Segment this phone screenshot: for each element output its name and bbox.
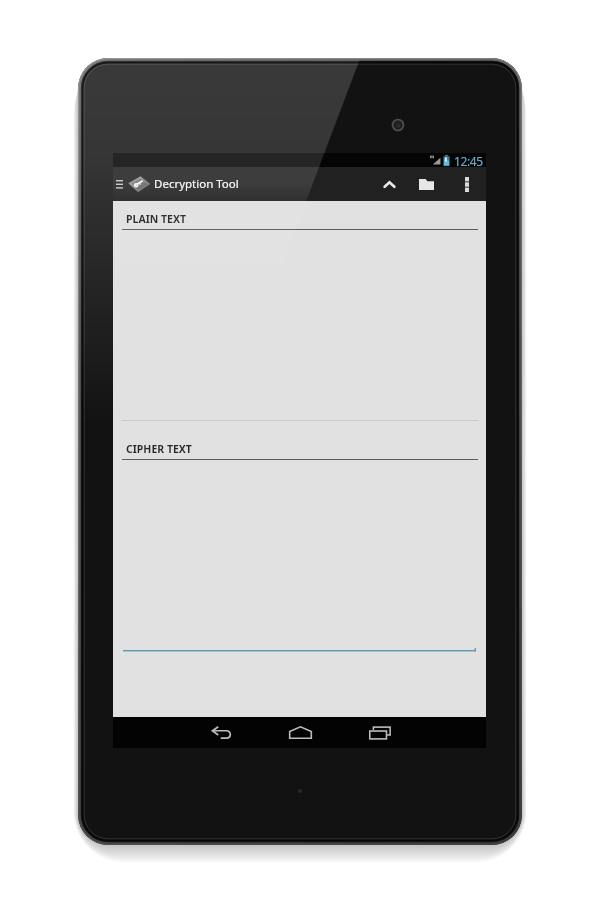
button[interactable]: Back: [204, 717, 238, 748]
button[interactable]: Collapse: [374, 167, 404, 201]
button[interactable]: More options: [452, 167, 482, 201]
staticText: Decryption Tool: [154, 176, 239, 192]
button[interactable]: Decryption Tool: [126, 167, 152, 201]
staticText: PLAIN TEXT: [126, 212, 187, 226]
staticText: 12:45: [454, 153, 483, 167]
button[interactable]: Open navigation drawer: [113, 167, 126, 201]
button[interactable]: Open file: [411, 167, 441, 201]
staticText: CIPHER TEXT: [126, 442, 192, 456]
button[interactable]: Home: [283, 717, 317, 748]
button[interactable]: Recent apps: [363, 717, 397, 748]
